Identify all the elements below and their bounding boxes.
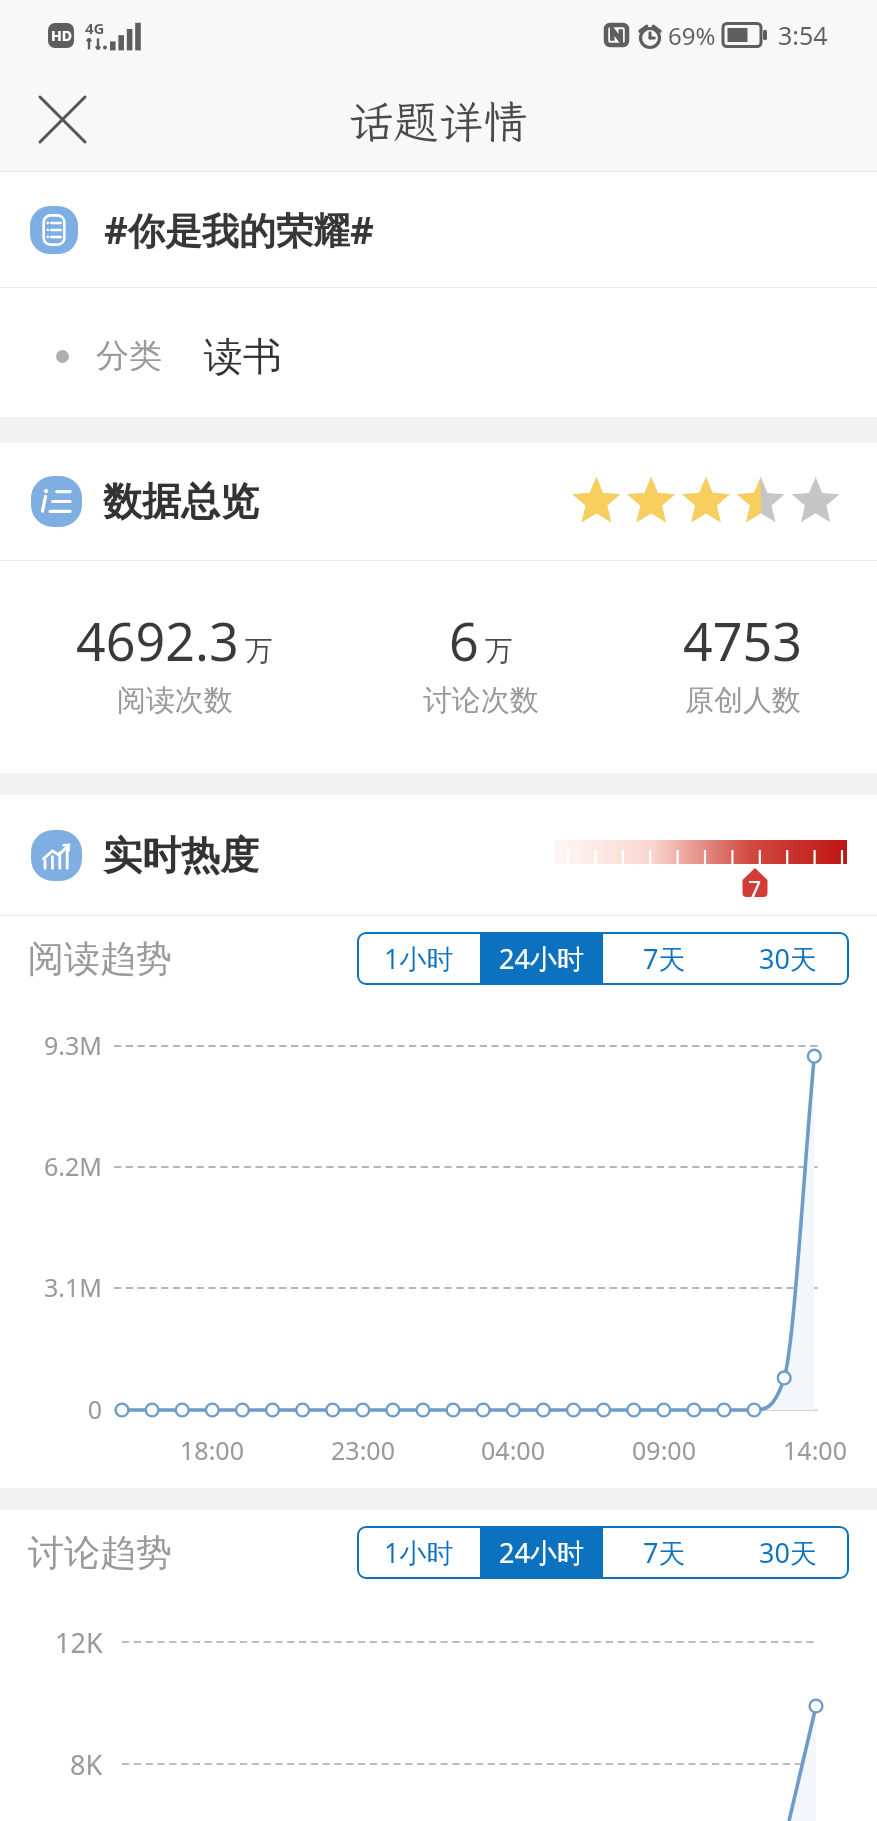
staticText: 讨论趋势 <box>28 1530 172 1575</box>
staticText: 3:54 <box>778 18 828 52</box>
staticText: 阅读次数 <box>117 682 233 719</box>
staticText: 7天 <box>643 1534 686 1571</box>
button[interactable]: #你是我的荣耀# <box>0 172 877 287</box>
staticText: 万 <box>485 633 513 668</box>
staticText: 1小时 <box>384 1534 454 1571</box>
button[interactable]: 24小时 <box>480 932 603 985</box>
button[interactable]: 30天 <box>726 1526 849 1579</box>
button[interactable]: 7天 <box>603 1526 726 1579</box>
staticText: 数据总览 <box>103 477 259 526</box>
staticText: 23:00 <box>331 1433 395 1467</box>
staticText: 3.1M <box>44 1270 102 1304</box>
staticText: 1小时 <box>384 940 454 977</box>
staticText: 实时热度 <box>103 831 259 880</box>
staticText: 6 <box>449 605 479 676</box>
button[interactable]: 30天 <box>726 932 849 985</box>
staticText: 24小时 <box>499 940 584 977</box>
staticText: #你是我的荣耀# <box>104 204 374 255</box>
button[interactable]: 24小时 <box>480 1526 603 1579</box>
staticText: 分类 <box>96 335 162 377</box>
staticText: 24小时 <box>499 1534 584 1571</box>
staticText: 读书 <box>204 332 282 381</box>
staticText: 12K <box>55 1624 103 1660</box>
staticText: 04:00 <box>481 1433 545 1467</box>
button[interactable]: 7天 <box>603 932 726 985</box>
staticText: 4753 <box>683 605 802 676</box>
button[interactable]: 1小时 <box>357 932 480 985</box>
staticText: 7天 <box>643 940 686 977</box>
staticText: 8K <box>70 1746 103 1782</box>
staticText: 30天 <box>759 940 817 977</box>
staticText: 话题详情 <box>348 92 529 151</box>
button[interactable]: Close <box>24 83 100 159</box>
staticText: 原创人数 <box>685 682 801 719</box>
staticText: 万 <box>245 633 273 668</box>
staticText: 6.2M <box>44 1149 102 1183</box>
staticText: 30天 <box>759 1534 817 1571</box>
button[interactable]: 1小时 <box>357 1526 480 1579</box>
staticText: 阅读趋势 <box>28 936 172 981</box>
staticText: 4692.3 <box>76 605 239 676</box>
staticText: 9.3M <box>44 1028 102 1062</box>
staticText: 09:00 <box>632 1433 696 1467</box>
staticText: 0 <box>87 1392 102 1426</box>
staticText: 4G <box>85 18 105 38</box>
staticText: 18:00 <box>180 1433 244 1467</box>
staticText: 69% <box>668 19 716 52</box>
staticText: 7 <box>748 873 762 903</box>
staticText: 14:00 <box>783 1433 847 1467</box>
staticText: 讨论次数 <box>423 682 539 719</box>
staticText: HD <box>51 26 72 45</box>
